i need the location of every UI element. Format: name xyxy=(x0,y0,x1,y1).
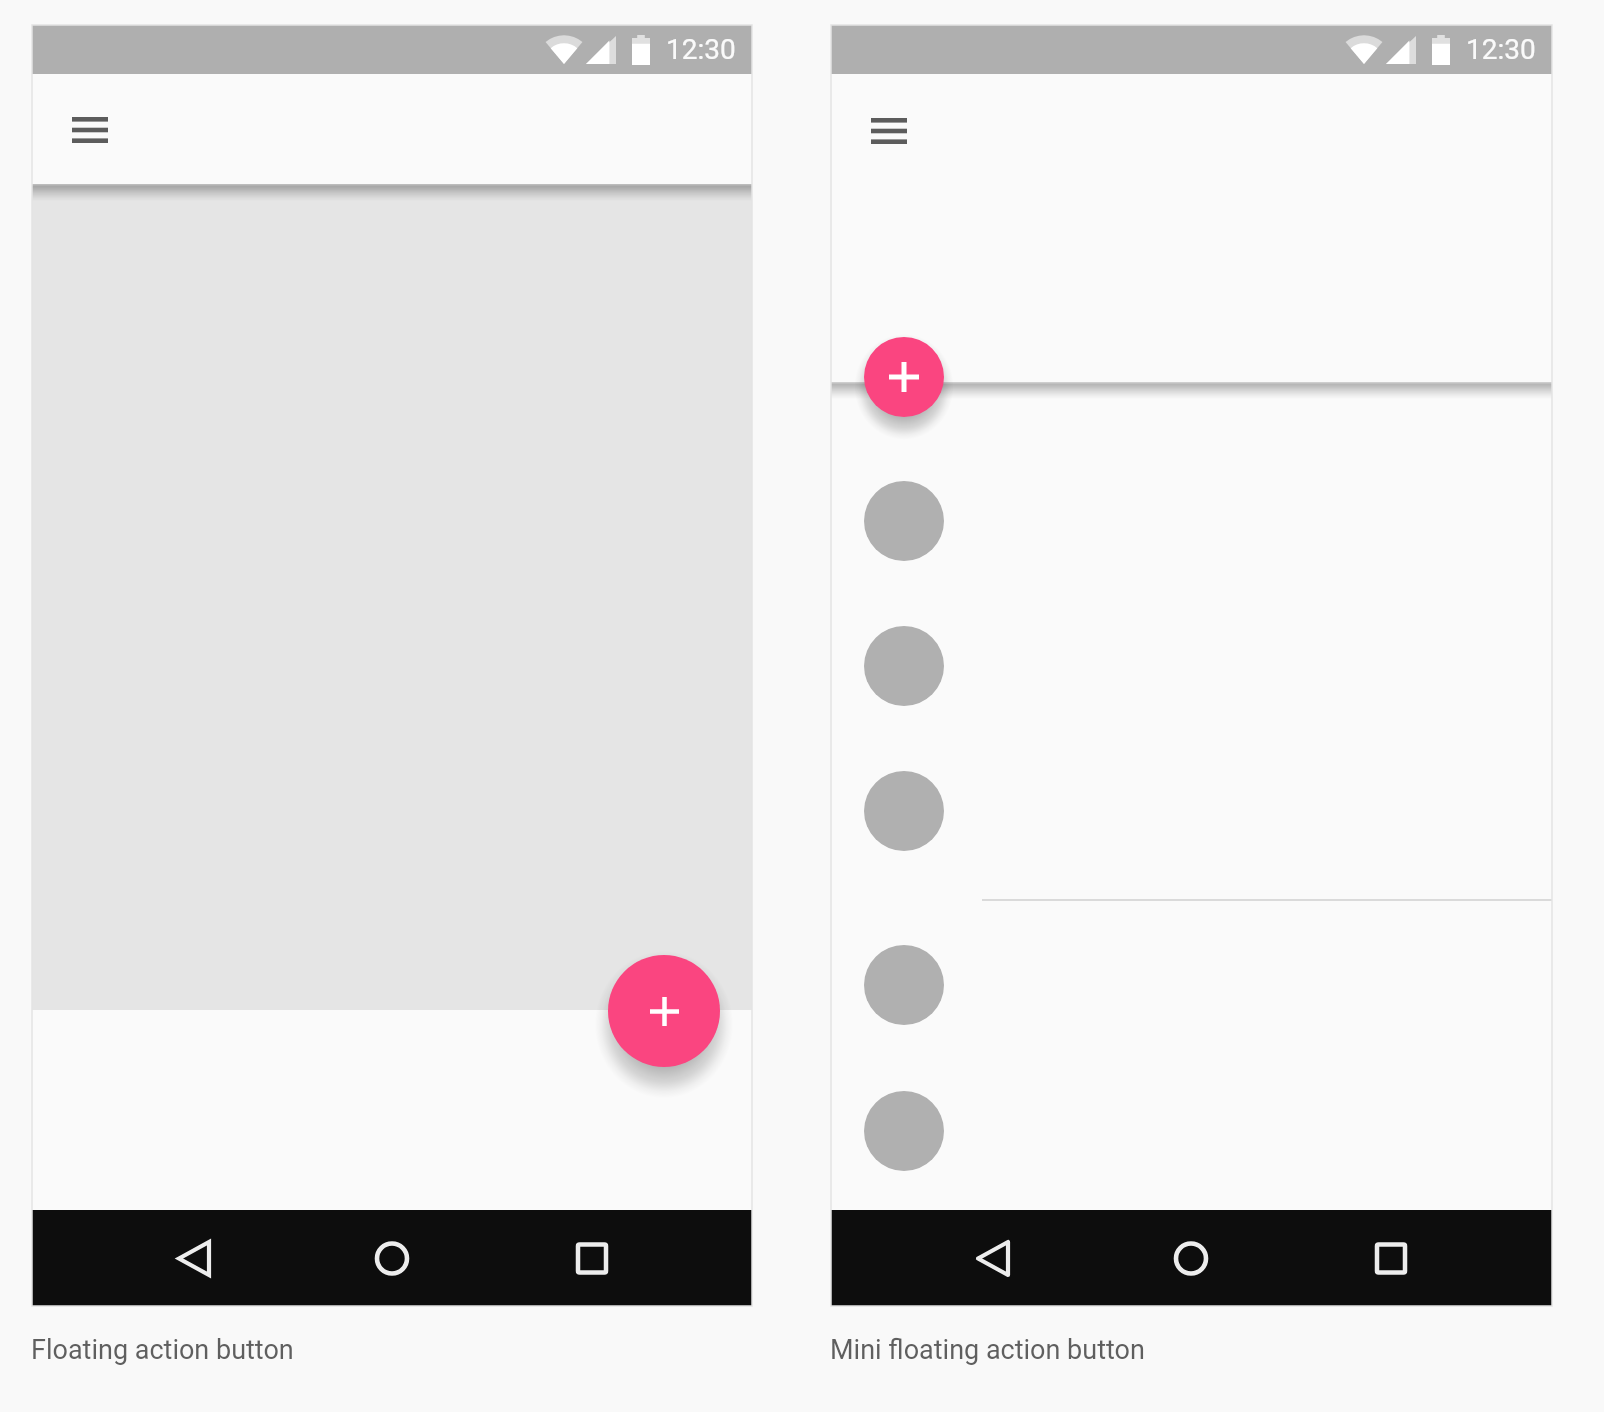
button[interactable]: Back xyxy=(961,1226,1025,1290)
button[interactable]: Recent apps xyxy=(1359,1226,1423,1290)
button[interactable]: Recent apps xyxy=(560,1226,624,1290)
button[interactable]: Home xyxy=(360,1226,424,1290)
button[interactable]: List item xyxy=(831,594,1552,738)
staticText: Mini floating action button xyxy=(830,1334,1145,1366)
button[interactable]: List item xyxy=(831,1059,1552,1203)
button[interactable]: Back xyxy=(162,1226,226,1290)
button[interactable]: List item xyxy=(831,739,1552,883)
staticText: 12:30 xyxy=(666,33,736,66)
button[interactable]: Open navigation menu xyxy=(56,96,124,164)
button[interactable]: Home xyxy=(1159,1226,1223,1290)
staticText: 12:30 xyxy=(1466,33,1536,66)
button[interactable]: List item xyxy=(831,913,1552,1057)
button[interactable]: List item xyxy=(831,449,1552,593)
button[interactable]: Create new item xyxy=(608,955,720,1067)
button[interactable]: Create new item xyxy=(864,337,944,417)
button[interactable]: Open navigation menu xyxy=(855,97,923,165)
staticText: Floating action button xyxy=(31,1334,294,1366)
